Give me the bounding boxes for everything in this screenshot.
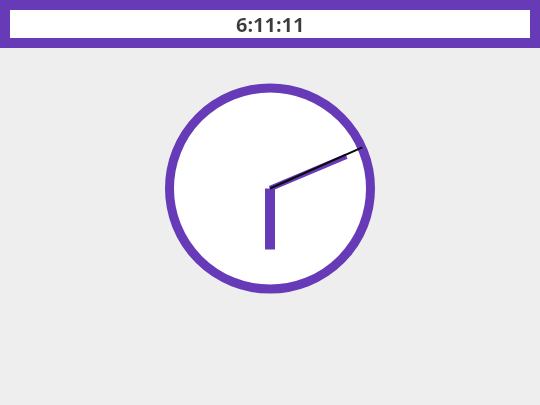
staticText: 6:11:11 [236,11,305,38]
